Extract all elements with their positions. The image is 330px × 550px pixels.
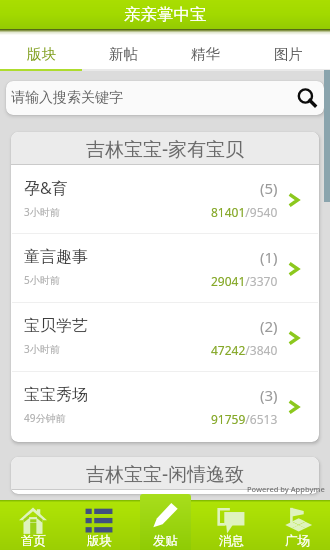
button[interactable]: 发贴 (140, 494, 191, 550)
staticText: 81401/9540 (211, 204, 278, 220)
staticText: 请输入搜索关键字 (11, 89, 123, 107)
staticText: 47242/3840 (211, 342, 278, 358)
button[interactable]: 版块 (0, 29, 82, 71)
staticText: (5) (260, 178, 278, 198)
staticText: 新帖 (109, 45, 138, 63)
staticText: (1) (260, 247, 278, 267)
staticText: 5小时前 (24, 273, 60, 287)
staticText: 精华 (191, 45, 220, 63)
staticText: 宝贝学艺 (24, 316, 88, 336)
staticText: 亲亲掌中宝 (124, 4, 207, 25)
staticText: 3小时前 (24, 205, 60, 219)
staticText: 消息 (219, 533, 244, 549)
staticText: 吉林宝宝-家有宝贝 (86, 136, 245, 162)
staticText: 91759/6513 (211, 411, 278, 427)
staticText: 3小时前 (24, 342, 60, 356)
button[interactable]: Plaza (264, 500, 330, 550)
staticText: 发贴 (153, 533, 178, 549)
staticText: 版块 (87, 533, 112, 549)
staticText: (3) (260, 385, 278, 405)
staticText: 广场 (285, 533, 310, 549)
staticText: 首页 (21, 533, 46, 549)
staticText: 宝宝秀场 (24, 385, 88, 405)
button[interactable]: Forums (66, 500, 132, 550)
other: Search (297, 88, 317, 108)
button[interactable]: 图片 (247, 29, 330, 71)
staticText: 吉林宝宝-闲情逸致 (86, 461, 245, 487)
button[interactable]: 宝宝秀场 (11, 372, 319, 440)
staticText: (2) (260, 316, 278, 336)
staticText: 49分钟前 (24, 411, 66, 425)
button[interactable]: 新帖 (82, 29, 164, 71)
staticText: 图片 (274, 45, 303, 63)
staticText: 29041/3370 (211, 273, 278, 289)
button[interactable]: Messages (198, 500, 264, 550)
button[interactable]: 精华 (164, 29, 247, 71)
staticText: 童言趣事 (24, 247, 88, 267)
staticText: Powered by Appbyme (247, 484, 325, 494)
staticText: 版块 (27, 45, 56, 63)
button[interactable]: 请输入搜索关键字 (6, 81, 324, 115)
button[interactable]: 童言趣事 (11, 234, 319, 302)
button[interactable]: 宝贝学艺 (11, 303, 319, 371)
button[interactable]: 孕&育 (11, 165, 319, 233)
staticText: 孕&育 (24, 177, 68, 199)
button[interactable]: Home (0, 500, 66, 550)
